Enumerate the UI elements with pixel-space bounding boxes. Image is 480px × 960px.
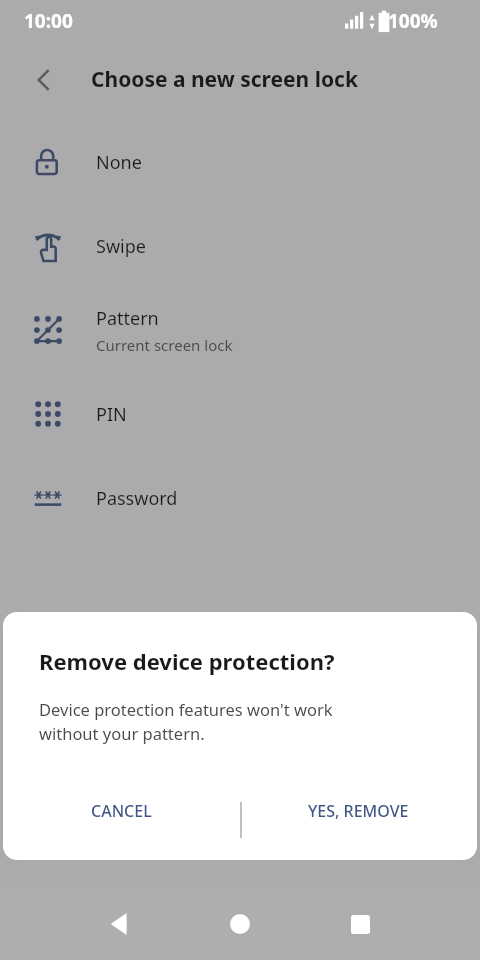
staticText: YES, REMOVE bbox=[308, 800, 409, 822]
staticText: Choose a new screen lock bbox=[91, 65, 358, 94]
staticText: Password bbox=[96, 486, 178, 511]
button[interactable]: CANCEL bbox=[3, 783, 240, 839]
button[interactable]: PIN bbox=[0, 372, 480, 456]
button[interactable]: None bbox=[0, 120, 480, 204]
staticText: Pattern bbox=[96, 306, 159, 331]
button[interactable]: Back bbox=[20, 56, 68, 104]
staticText: 10:00 bbox=[24, 8, 73, 34]
button[interactable]: Pattern bbox=[0, 288, 480, 372]
button[interactable]: Swipe bbox=[0, 204, 480, 288]
staticText: 100% bbox=[388, 8, 438, 34]
staticText: None bbox=[96, 150, 142, 175]
staticText: PIN bbox=[96, 402, 127, 427]
button[interactable]: Home bbox=[216, 900, 264, 948]
staticText: Current screen lock bbox=[96, 335, 233, 355]
button[interactable]: Password bbox=[0, 456, 480, 540]
staticText: Remove device protection? bbox=[39, 646, 335, 676]
button[interactable]: Back bbox=[96, 900, 144, 948]
staticText: Device protection features won't work wi… bbox=[39, 698, 333, 745]
button[interactable]: YES, REMOVE bbox=[240, 783, 477, 839]
staticText: CANCEL bbox=[91, 800, 152, 822]
button[interactable]: Recent apps bbox=[336, 900, 384, 948]
staticText: Swipe bbox=[96, 234, 146, 259]
